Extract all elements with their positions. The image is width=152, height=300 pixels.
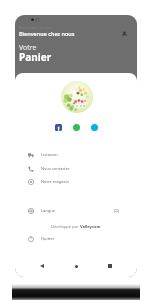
button[interactable]: WhatsApp (73, 124, 80, 131)
staticText: Valleycom (80, 224, 101, 229)
button[interactable]: Notre magasin (15, 175, 137, 188)
button[interactable]: Back (36, 261, 48, 271)
staticText: Bienvenue chez nous (19, 30, 75, 37)
staticText: Quitter (41, 236, 55, 241)
button[interactable]: Nous contacter (15, 162, 137, 175)
staticText: Bienvenue à tous (19, 25, 52, 30)
button[interactable]: Facebook (55, 124, 62, 131)
button[interactable]: Recents (104, 261, 116, 271)
staticText: Langue (41, 208, 55, 213)
button[interactable]: Livraison (15, 148, 137, 161)
button[interactable]: Telegram (91, 124, 98, 131)
staticText: Développé par (51, 224, 80, 229)
button[interactable]: Home (70, 261, 82, 271)
staticText: Votre (19, 43, 37, 53)
staticText: Nous contacter (41, 166, 70, 171)
staticText: Livraison (41, 152, 58, 157)
staticText: FR (114, 208, 120, 214)
staticText: Notre magasin (41, 179, 69, 184)
button[interactable]: Langue (15, 204, 137, 217)
button[interactable]: Quitter (15, 232, 137, 245)
button[interactable]: Account (121, 31, 128, 38)
staticText: Panier (19, 50, 52, 64)
